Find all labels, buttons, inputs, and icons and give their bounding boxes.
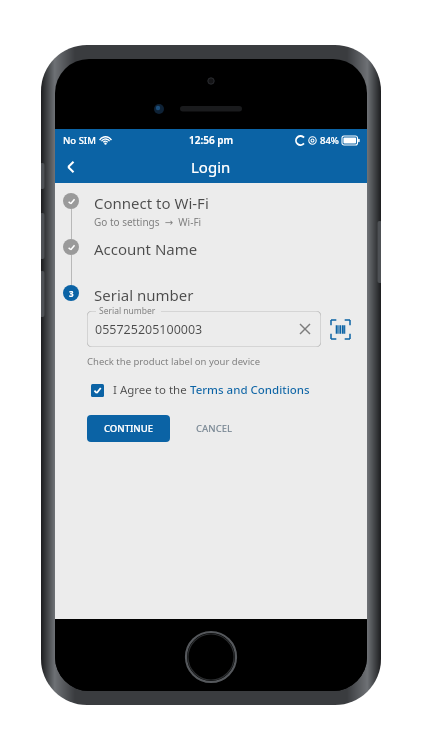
button[interactable]: Account Name bbox=[55, 239, 367, 285]
staticText: 84% bbox=[320, 134, 339, 147]
staticText: 055725205100003 bbox=[95, 321, 203, 338]
staticText: 3 bbox=[69, 288, 74, 299]
staticText: Connect to Wi-Fi bbox=[94, 193, 209, 213]
button[interactable]: 3 bbox=[55, 285, 367, 305]
staticText: I Agree to the bbox=[113, 382, 190, 398]
staticText: Check the product label on your device bbox=[87, 355, 261, 368]
staticText: Serial number bbox=[99, 305, 156, 317]
staticText: Serial number bbox=[94, 285, 194, 305]
staticText: Login bbox=[191, 157, 231, 177]
staticText: No SIM bbox=[63, 134, 96, 147]
button[interactable]: CONTINUE bbox=[87, 415, 170, 442]
staticText: 12:56 pm bbox=[189, 133, 234, 147]
button[interactable]: Back bbox=[55, 151, 87, 183]
staticText: Go to settings → Wi-Fi bbox=[94, 215, 202, 229]
staticText: CONTINUE bbox=[104, 422, 154, 435]
button[interactable]: CANCEL bbox=[186, 416, 243, 441]
button[interactable]: Connect to Wi-Fi bbox=[55, 193, 367, 239]
staticText: Terms and Conditions bbox=[190, 382, 310, 398]
staticText: Account Name bbox=[94, 239, 198, 259]
button[interactable]: 055725205100003 bbox=[87, 311, 321, 347]
staticText: CANCEL bbox=[196, 422, 233, 435]
button[interactable]: Clear bbox=[295, 319, 315, 339]
button[interactable]: Scan barcode bbox=[329, 318, 351, 340]
button[interactable]: I Agree to the bbox=[91, 382, 310, 398]
